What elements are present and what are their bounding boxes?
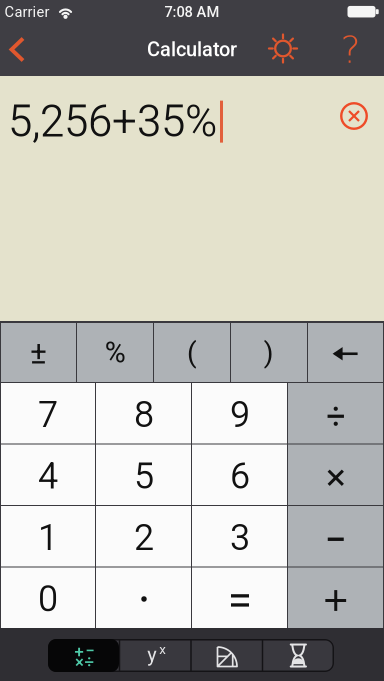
button[interactable]: 4 (0, 444, 95, 505)
staticText: 5 (134, 455, 154, 497)
button[interactable]: 9 (192, 383, 287, 444)
staticText: Calculator (147, 38, 237, 61)
staticText: 7 (38, 394, 58, 436)
staticText: 3 (230, 517, 250, 559)
button[interactable]: 0 (0, 567, 95, 628)
button[interactable]: add (288, 567, 384, 628)
button[interactable]: 7 (0, 383, 95, 444)
staticText: ÷ (84, 652, 94, 671)
staticText: 0 (38, 578, 58, 620)
staticText: 2 (134, 517, 154, 559)
staticText: − (85, 641, 94, 660)
staticText: Carrier (4, 3, 49, 21)
button[interactable]: Basic calculator (48, 639, 119, 672)
button[interactable]: 3 (192, 506, 287, 567)
staticText: y (147, 643, 156, 667)
button[interactable]: 1 (0, 506, 95, 567)
button[interactable]: 5 (96, 444, 191, 505)
button[interactable]: Backspace (308, 323, 384, 382)
button[interactable]: ( (154, 323, 230, 382)
button[interactable]: ) (231, 323, 307, 382)
button[interactable]: 2 (96, 506, 191, 567)
button[interactable]: equals (193, 567, 287, 627)
button[interactable]: 6 (192, 444, 287, 505)
staticText: ? (340, 27, 360, 72)
button[interactable]: History (263, 639, 334, 672)
staticText: 9 (230, 394, 250, 436)
staticText: 1 (38, 517, 58, 559)
staticText: + (74, 642, 83, 662)
button[interactable]: Scientific calculator (120, 639, 191, 672)
button[interactable]: decimal point (97, 567, 191, 627)
staticText: % (105, 336, 126, 370)
button[interactable]: multiply (288, 444, 384, 505)
button[interactable]: Help (330, 27, 370, 71)
button[interactable]: Back (0, 28, 44, 72)
staticText: 8 (134, 394, 154, 436)
button[interactable]: Clear (337, 99, 371, 133)
staticText: ) (264, 336, 274, 369)
staticText: 5,256+35% (8, 96, 217, 147)
button[interactable]: ± (0, 323, 76, 382)
staticText: × (75, 652, 84, 672)
button[interactable]: subtract (288, 506, 384, 567)
staticText: 7:08 AM (164, 3, 219, 21)
button[interactable]: divide (288, 383, 384, 444)
staticText: ± (30, 334, 47, 371)
button[interactable]: 8 (96, 383, 191, 444)
button[interactable]: Geometry (191, 639, 262, 672)
button[interactable]: Themes (261, 26, 305, 70)
staticText: 6 (230, 455, 250, 497)
staticText: 4 (38, 455, 58, 497)
staticText: x (159, 642, 166, 657)
button[interactable]: % (77, 323, 153, 382)
staticText: ( (187, 336, 197, 369)
